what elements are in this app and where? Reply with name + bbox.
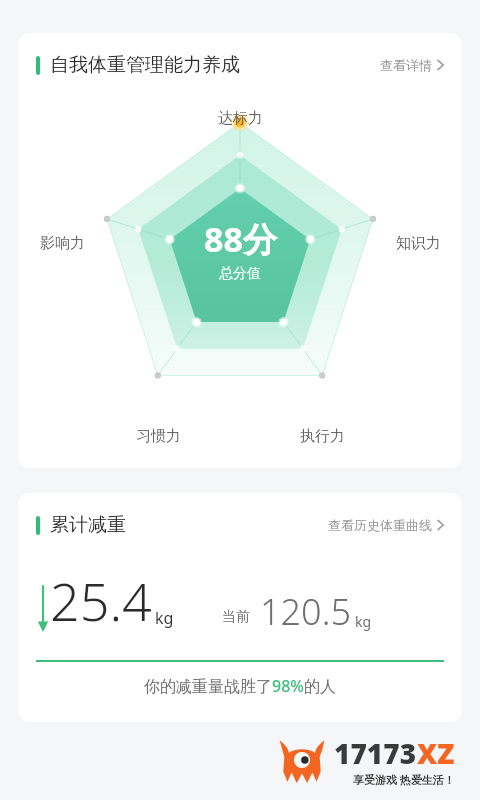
staticText: 120.5 [260,587,352,636]
staticText: kg [155,607,174,629]
staticText: 总分值 [219,265,261,283]
staticText: 你的减重量战胜了98%的人 [144,675,336,697]
staticText: 查看历史体重曲线 [328,517,432,533]
staticText: 88分 [204,216,277,262]
button[interactable]: 查看详情 [378,53,446,77]
staticText: 执行力 [300,427,345,446]
staticText: kg [355,612,372,631]
staticText: 查看详情 [380,57,432,73]
staticText: 知识力 [396,234,441,253]
staticText: 习惯力 [136,427,181,446]
staticText: 累计减重 [50,513,126,537]
staticText: XZ [417,734,455,772]
button[interactable]: 查看历史体重曲线 [326,513,446,537]
staticText: 享受游戏 热爱生活！ [353,772,455,787]
staticText: 25.4 [50,565,152,636]
staticText: 影响力 [40,234,85,253]
staticText: 当前 [222,608,250,626]
staticText: 17173 [334,734,417,772]
staticText: 自我体重管理能力养成 [50,53,240,77]
staticText: 达标力 [218,109,263,128]
